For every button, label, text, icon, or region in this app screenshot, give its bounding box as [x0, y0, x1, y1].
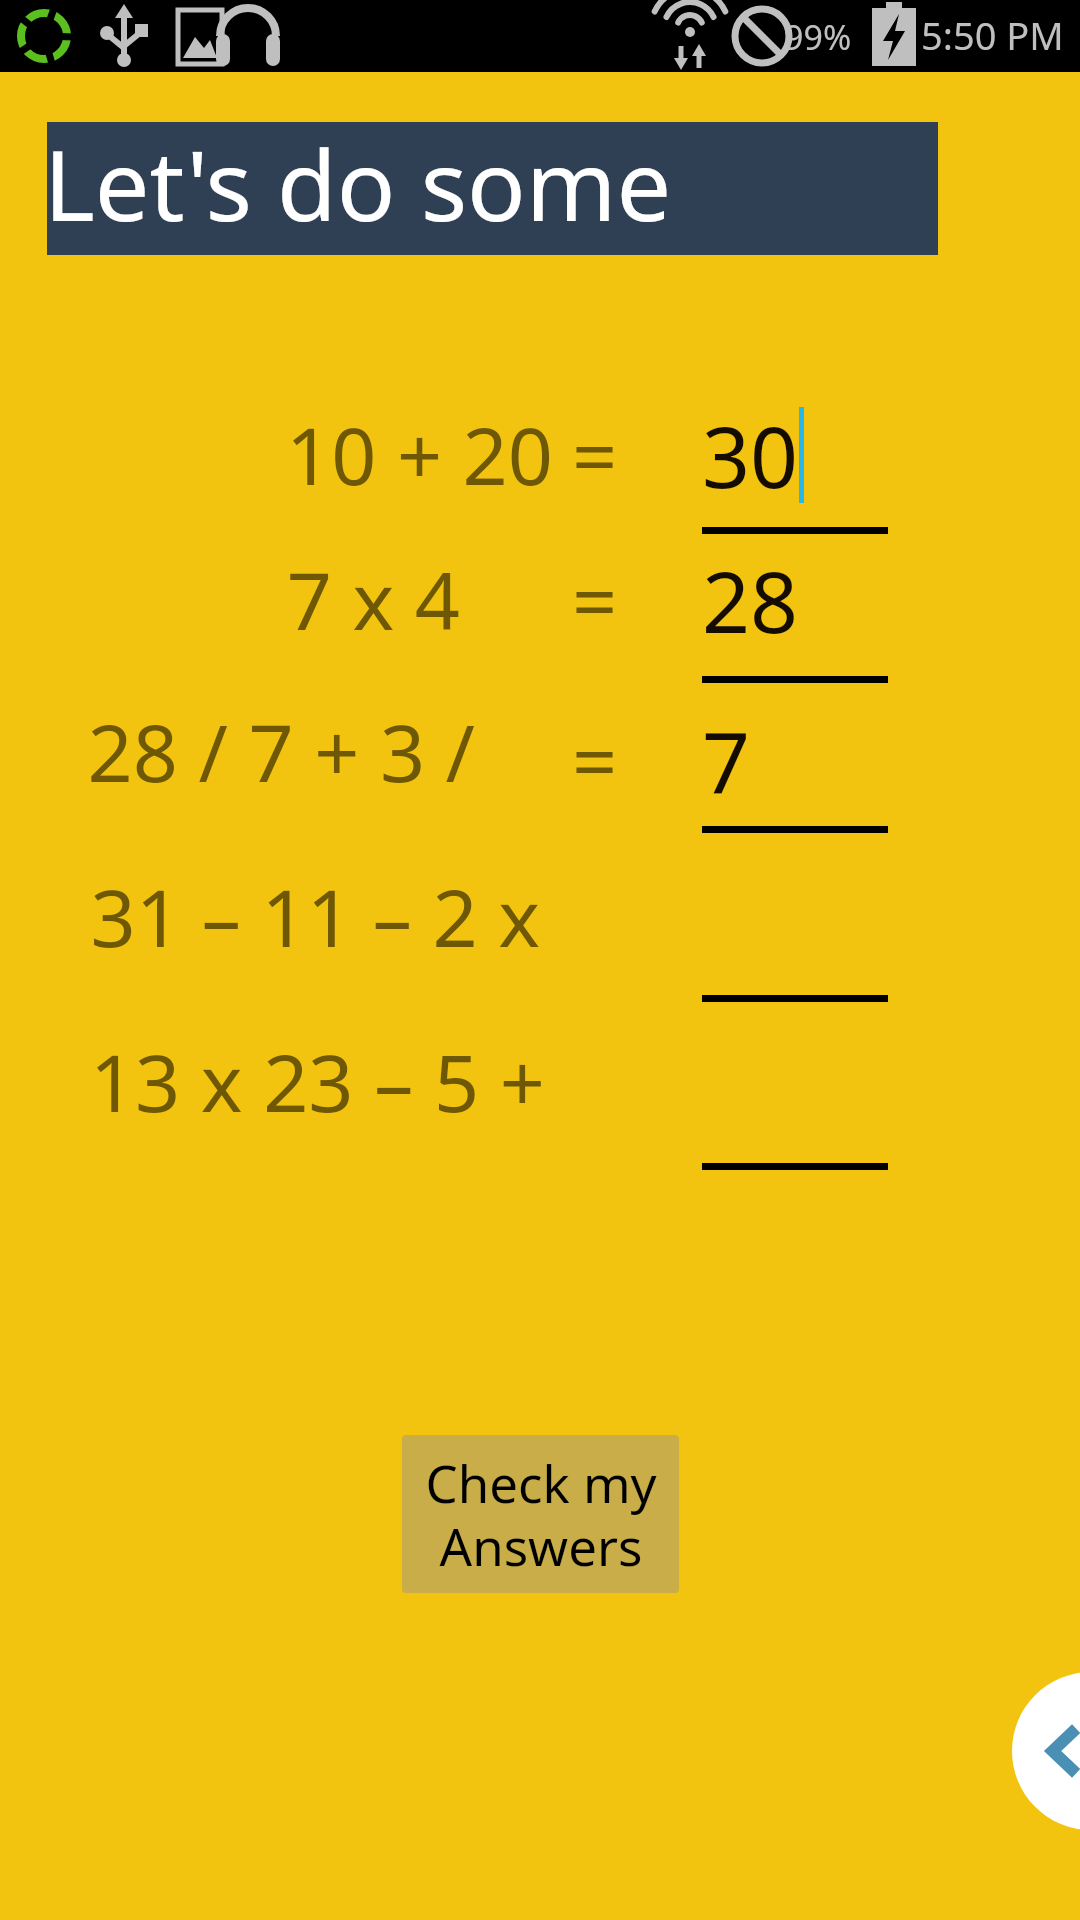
staticText: 31 – 11 – 2 x 5 — [30, 863, 540, 987]
staticText: = — [572, 706, 618, 814]
button[interactable]: Open navigation drawer — [1012, 1672, 1080, 1830]
staticText: 28 — [702, 543, 799, 657]
staticText: = — [572, 546, 618, 654]
staticText: 5:50 PM — [921, 9, 1064, 61]
button[interactable]: Answer field — [702, 393, 888, 517]
button[interactable]: Check my Answers — [402, 1435, 679, 1593]
staticText: 13 x 23 – 5 + 2 — [30, 1028, 545, 1152]
staticText: Let's do some math! — [44, 117, 935, 250]
staticText: 10 + 20 — [285, 401, 553, 509]
button[interactable]: Let's do some math! — [47, 122, 938, 255]
button[interactable]: Answer field — [702, 538, 888, 662]
staticText: 7 — [702, 703, 751, 817]
staticText: Check my Answers — [425, 1448, 657, 1581]
staticText: = — [572, 401, 618, 509]
staticText: 28 / 7 + 3 / 1 — [30, 698, 475, 822]
staticText: 7 x 4 — [286, 546, 460, 654]
staticText: 30 — [702, 398, 799, 512]
button[interactable]: Answer field — [702, 698, 888, 822]
staticText: 99% — [784, 14, 852, 60]
